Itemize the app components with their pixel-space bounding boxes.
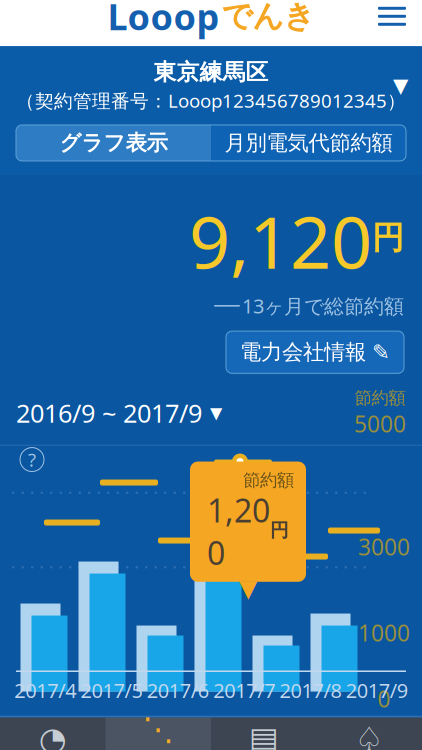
staticText: 2017/6: [147, 677, 209, 704]
staticText: 2017/8: [279, 677, 341, 704]
staticText: 東京練馬区: [153, 58, 268, 86]
staticText: 1000: [358, 618, 410, 648]
staticText: 円: [372, 218, 404, 257]
staticText: ▼: [393, 74, 408, 97]
button[interactable]: ♤: [316, 718, 422, 750]
staticText: 節約額: [354, 387, 405, 409]
staticText: 月別電気代節約額: [224, 130, 392, 156]
staticText: ▤: [249, 721, 279, 750]
staticText: でんき: [221, 0, 314, 35]
staticText: 2016/9 ~ 2017/9: [16, 396, 202, 430]
staticText: ▼: [239, 575, 257, 602]
button[interactable]: 月別電気代節約額: [211, 125, 406, 161]
button[interactable]: ▤: [211, 718, 316, 750]
staticText: ♤: [355, 721, 384, 750]
staticText: 電力会社情報: [240, 339, 366, 365]
staticText: 1,200: [207, 489, 270, 574]
staticText: 節約額: [243, 469, 294, 491]
staticText: ✎: [372, 340, 390, 364]
staticText: グラフ表示: [59, 130, 167, 156]
staticText: 9,120: [189, 193, 372, 288]
staticText: 2017/7: [213, 677, 275, 704]
button[interactable]: 電力会社情報: [226, 331, 404, 373]
staticText: 円: [270, 519, 289, 542]
staticText: ⋱: [142, 711, 174, 747]
button[interactable]: ⋱: [105, 718, 211, 750]
staticText: 2017/5: [80, 677, 142, 704]
staticText: （契約管理番号：Looop123456789012345）: [16, 88, 406, 113]
staticText: 2017/4: [14, 677, 76, 704]
staticText: ◔: [39, 721, 67, 750]
staticText: 3000: [358, 531, 410, 562]
staticText: 2017/9: [346, 677, 408, 704]
button[interactable]: ◔: [0, 718, 105, 750]
staticText: 0: [377, 684, 390, 714]
staticText: Looop: [107, 0, 219, 40]
staticText: 13ヶ月で総節約額: [242, 292, 404, 319]
button[interactable]: グラフ表示: [16, 125, 211, 161]
button[interactable]: Menu: [362, 0, 422, 38]
staticText: ▼: [210, 404, 222, 422]
button[interactable]: Select contract: [379, 64, 422, 107]
button[interactable]: 2016/9 ~ 2017/9: [16, 392, 222, 434]
staticText: ?: [28, 447, 36, 472]
staticText: 5000: [354, 409, 406, 439]
